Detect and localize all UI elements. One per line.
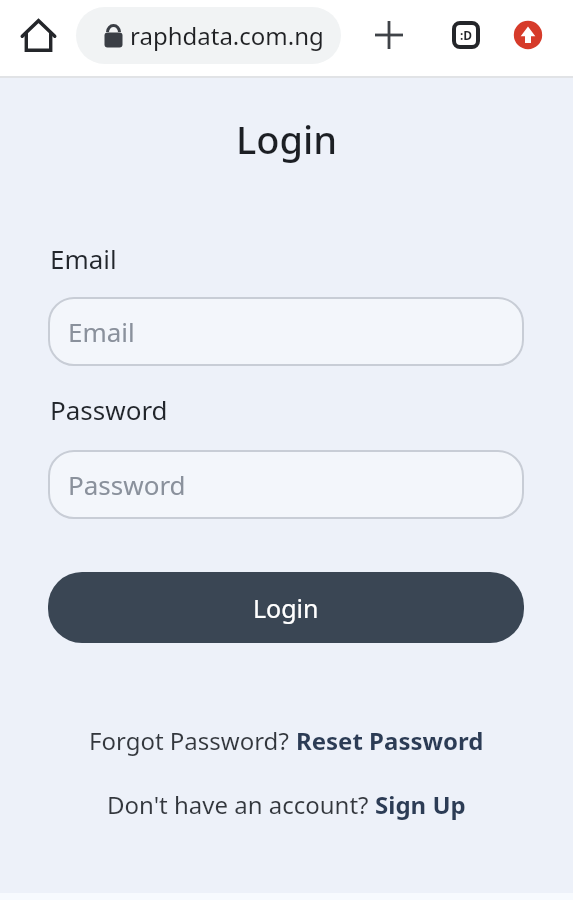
staticText: raphdata.com.ng — [130, 19, 324, 52]
staticText: Password — [68, 467, 186, 502]
staticText: Password — [50, 392, 168, 427]
button[interactable]: :D — [452, 21, 480, 49]
staticText: Email — [68, 314, 135, 349]
button[interactable]: raphdata.com.ng — [76, 7, 341, 64]
staticText: Login — [236, 113, 338, 165]
staticText: Login — [253, 591, 319, 625]
button[interactable]: Sign Up — [375, 788, 466, 821]
button[interactable]: Reset Password — [296, 724, 484, 757]
button[interactable]: Password — [48, 450, 524, 519]
button[interactable]: Login — [48, 572, 524, 643]
staticText: Forgot Password? — [89, 724, 296, 757]
staticText: Email — [50, 241, 117, 276]
button[interactable] — [375, 21, 403, 49]
staticText: :D — [460, 27, 473, 43]
button[interactable]: Email — [48, 297, 524, 366]
button[interactable] — [513, 20, 543, 50]
button[interactable] — [20, 17, 57, 54]
staticText: Don't have an account? — [107, 788, 375, 821]
